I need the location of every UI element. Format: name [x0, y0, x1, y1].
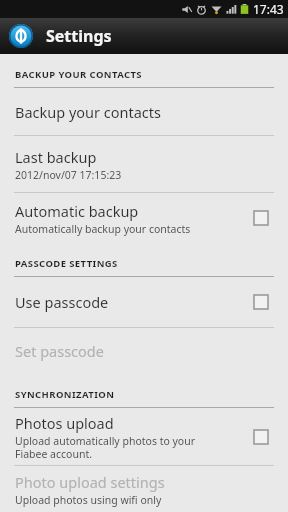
staticText: Settings	[46, 25, 112, 47]
button[interactable]: Toggle Automatic backup	[248, 205, 274, 231]
staticText: 17:43	[253, 1, 284, 17]
button[interactable]: Photos upload	[0, 408, 288, 465]
staticText: BACKUP YOUR CONTACTS	[15, 68, 142, 81]
button[interactable]: App icon	[9, 24, 33, 48]
button[interactable]: Automatic backup	[0, 193, 288, 243]
staticText: PASSCODE SETTINGS	[15, 257, 118, 270]
button[interactable]: Last backup	[0, 136, 288, 192]
staticText: Photo upload settings	[15, 472, 165, 492]
button[interactable]: Set passcode	[0, 328, 288, 374]
staticText: Automatically backup your contacts	[15, 222, 191, 236]
staticText: Backup your contacts	[15, 102, 161, 122]
staticText: Last backup	[15, 147, 97, 167]
staticText: 2012/nov/07 17:15:23	[15, 168, 122, 182]
staticText: SYNCHRONIZATION	[15, 388, 115, 401]
button[interactable]: Toggle Photos upload	[248, 424, 274, 450]
button[interactable]: Toggle Use passcode	[248, 289, 274, 315]
button[interactable]: Backup your contacts	[0, 88, 288, 135]
staticText: Automatic backup	[15, 201, 139, 221]
button[interactable]: Use passcode	[0, 277, 288, 327]
staticText: Use passcode	[15, 292, 109, 312]
button[interactable]: Photo upload settings	[0, 466, 288, 512]
staticText: Photos upload	[15, 413, 114, 433]
staticText: Set passcode	[15, 341, 104, 361]
staticText: Upload automatically photos to your Fiab…	[15, 434, 196, 461]
staticText: Upload photos using wifi only	[15, 493, 162, 507]
